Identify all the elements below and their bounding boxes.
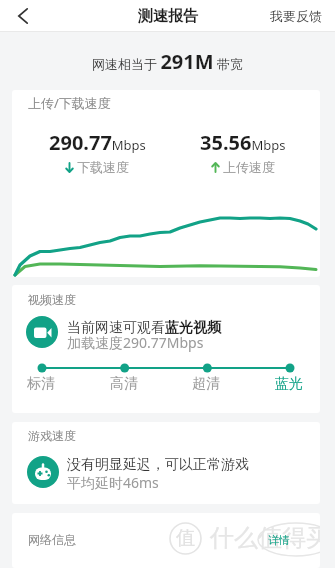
button[interactable] [26,316,58,348]
staticText: 35.56Mbps [200,129,286,156]
staticText: 290.77Mbps [49,129,146,156]
staticText: 测速报告 [138,7,198,26]
button[interactable]: 标清 [27,375,55,393]
staticText: 我要反馈 [270,8,322,24]
button[interactable]: 下载速度 [65,159,129,175]
button[interactable]: 我要反馈 [270,8,322,24]
staticText: 值 [176,526,195,550]
staticText: 上传/下载速度 [28,94,111,112]
staticText: 没有明显延迟，可以正常游戏 [67,456,249,474]
button[interactable]: 上传速度 [211,159,275,175]
staticText: 加载速度290.77Mbps [67,333,204,352]
button[interactable]: 超清 [192,375,220,393]
staticText: 网速相当于 291M 带宽 [92,48,243,75]
button[interactable] [12,5,34,27]
button[interactable]: 蓝光 [275,375,303,393]
staticText: 当前网速可观看蓝光视频 [67,319,221,337]
staticText: 上传速度 [223,159,275,175]
staticText: 网络信息 [28,532,76,547]
button[interactable] [27,456,59,488]
staticText: 详情 [268,533,290,547]
staticText: 平均延时46ms [67,473,159,492]
button[interactable]: 高清 [110,375,138,393]
staticText: 下载速度 [77,159,129,175]
staticText: 视频速度 [28,292,76,307]
staticText: 游戏速度 [28,428,76,443]
staticText: 什么值得买 [210,523,320,553]
